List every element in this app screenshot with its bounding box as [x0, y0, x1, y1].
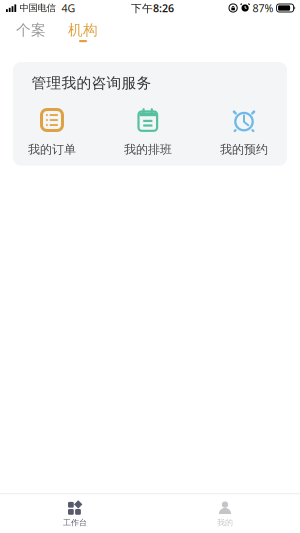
button[interactable]: 机构: [68, 21, 98, 42]
button[interactable]: 我的订单: [24, 107, 80, 157]
staticText: 中国电信: [19, 2, 55, 14]
button[interactable]: 我的预约: [216, 107, 272, 157]
staticText: 工作台: [63, 518, 87, 527]
staticText: 87%: [253, 1, 274, 15]
staticText: 个案: [16, 21, 46, 39]
button[interactable]: 我的排班: [120, 107, 176, 157]
button[interactable]: 个案: [16, 21, 46, 39]
staticText: 我的订单: [28, 142, 76, 157]
staticText: 机构: [68, 21, 98, 39]
button[interactable]: 工作台: [0, 494, 150, 527]
button[interactable]: 我的: [150, 494, 300, 527]
staticText: 管理我的咨询服务: [31, 74, 151, 92]
staticText: 下午8:26: [131, 1, 174, 15]
staticText: 我的排班: [124, 142, 172, 157]
staticText: 我的预约: [220, 142, 268, 157]
staticText: 4G: [61, 1, 75, 15]
staticText: 我的: [217, 518, 233, 527]
